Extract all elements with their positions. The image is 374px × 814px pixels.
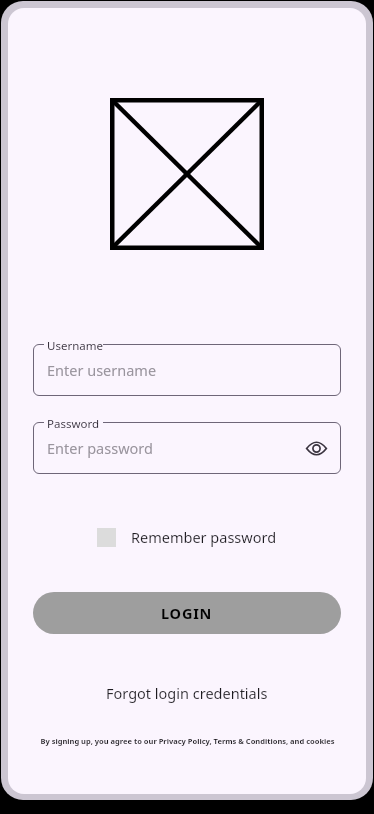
staticText: Enter password (47, 438, 153, 458)
button[interactable] (33, 344, 341, 396)
staticText: LOGIN (161, 603, 213, 623)
button[interactable]: LOGIN (33, 592, 341, 634)
staticText: By signing up, you agree to our Privacy … (40, 736, 335, 746)
button[interactable]: Remember password (93, 523, 281, 551)
staticText: Forgot login credentials (106, 683, 268, 703)
staticText: Enter username (47, 360, 157, 380)
button[interactable]: Show password (299, 431, 333, 465)
other: Logo placeholder (110, 98, 264, 250)
button[interactable]: Forgot login credentials (98, 679, 276, 707)
staticText: Password (47, 416, 100, 432)
staticText: Remember password (131, 527, 277, 547)
button[interactable] (33, 422, 341, 474)
staticText: Username (47, 338, 103, 354)
